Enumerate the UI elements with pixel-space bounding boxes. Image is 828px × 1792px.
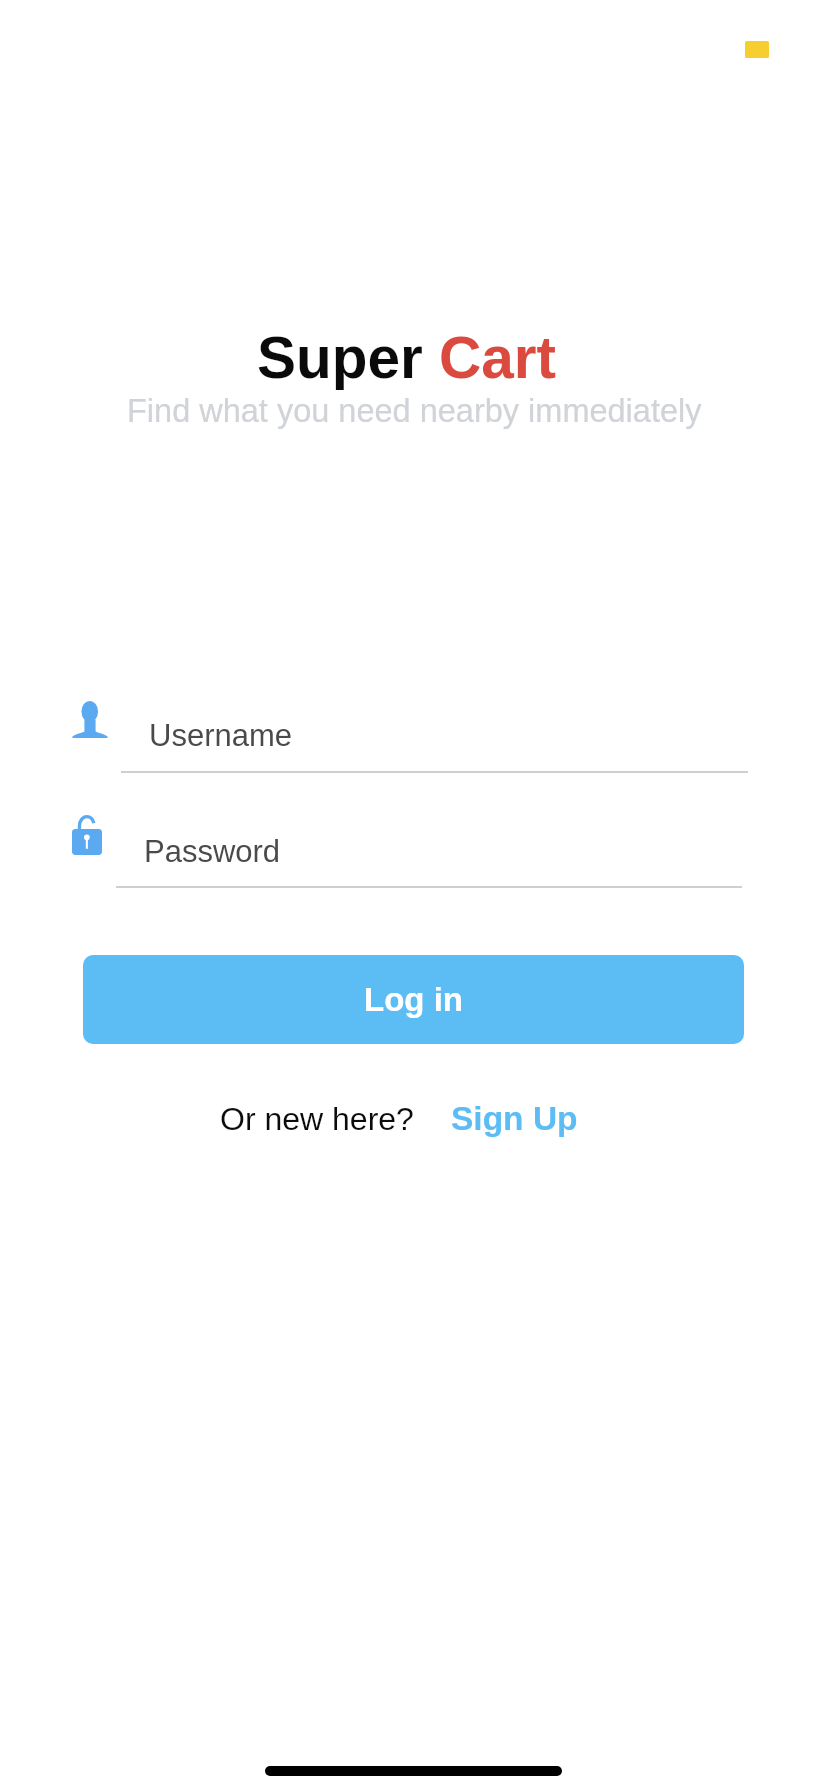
staticText: Log in [364,981,463,1018]
staticText: Or new here? [220,1101,414,1137]
button[interactable]: Password field [116,815,742,888]
other: Status indicator [745,41,769,58]
button[interactable]: Log in [83,955,744,1044]
staticText: Find what you need nearby immediately [127,393,702,429]
button[interactable]: Username field [121,700,748,773]
staticText: Username [149,718,292,753]
staticText: Password [144,834,281,869]
staticText: Sign Up [451,1100,578,1137]
staticText: Super Cart [257,325,557,390]
button[interactable]: Sign Up [451,1100,578,1137]
